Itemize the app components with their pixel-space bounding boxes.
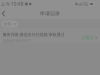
button[interactable]: 服务升级 微信支付分提额 审核通过 — [0, 28, 100, 43]
staticText: 申请记录 — [40, 10, 60, 17]
staticText: 2024/01/08 09:17 — [3, 38, 31, 43]
staticText: 服务升级 微信支付分提额 审核通过 — [3, 32, 65, 37]
staticText: 上午10:48 — [1, 1, 24, 7]
staticText: 已通过 — [81, 35, 93, 40]
staticText: 全部 — [4, 21, 12, 26]
button[interactable]: 全部 — [1, 21, 18, 27]
staticText: 5G — [83, 1, 88, 7]
button[interactable]: Back — [0, 8, 9, 19]
